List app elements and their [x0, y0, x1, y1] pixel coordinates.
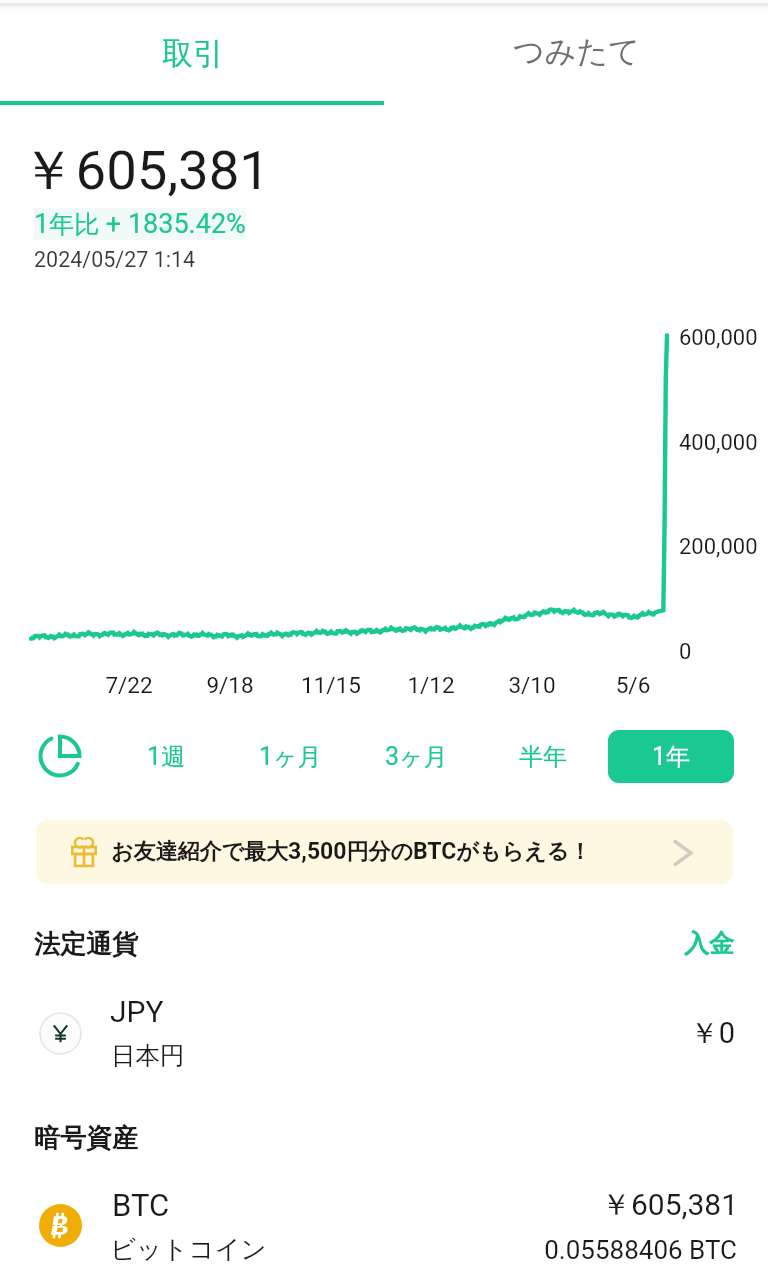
button[interactable]: 半年 — [488, 730, 598, 783]
staticText: お友達紹介で最大3,500円分のBTCがもらえる！ — [111, 838, 591, 866]
staticText: 暗号資産 — [34, 1122, 138, 1155]
staticText: 0.05588406 BTC — [460, 1235, 737, 1265]
staticText: 1週 — [147, 742, 186, 772]
button[interactable]: 1年 — [608, 730, 734, 783]
staticText: ビットコイン — [110, 1233, 267, 1265]
staticText: 9/18 — [170, 672, 290, 698]
staticText: 入金 — [600, 928, 734, 959]
button[interactable]: BTC — [0, 1182, 768, 1274]
staticText: 半年 — [519, 742, 567, 772]
button[interactable]: 取引 — [0, 0, 384, 105]
staticText: 200,000 — [679, 534, 758, 560]
staticText: 0 — [679, 639, 692, 665]
staticText: ￥605,381 — [460, 1186, 738, 1224]
staticText: 1ヶ月 — [259, 742, 322, 772]
staticText: 1年比 + 1835.42% — [34, 208, 246, 240]
button[interactable]: お友達紹介で最大3,500円分のBTCがもらえる！ — [36, 820, 733, 884]
staticText: 600,000 — [679, 325, 758, 351]
staticText: JPY — [110, 994, 164, 1029]
staticText: 日本円 — [111, 1040, 185, 1071]
staticText: 7/22 — [69, 672, 189, 698]
button[interactable]: JPY — [0, 990, 768, 1080]
staticText: ￥0 — [560, 1015, 735, 1052]
button[interactable]: 3ヶ月 — [361, 730, 471, 783]
staticText: BTC — [112, 1187, 170, 1223]
button[interactable]: 1ヶ月 — [235, 730, 345, 783]
staticText: 取引 — [162, 34, 224, 73]
staticText: 400,000 — [679, 430, 758, 456]
staticText: ￥605,381 — [21, 137, 271, 206]
staticText: 11/15 — [271, 672, 391, 698]
button[interactable]: つみたて — [384, 0, 768, 105]
staticText: 3/10 — [472, 672, 592, 698]
staticText: 2024/05/27 1:14 — [34, 247, 196, 272]
staticText: 1/12 — [371, 672, 491, 698]
staticText: 3ヶ月 — [385, 742, 448, 772]
button[interactable]: ポートフォリオ — [30, 726, 90, 786]
staticText: 5/6 — [573, 672, 693, 698]
button[interactable]: 1週 — [111, 730, 221, 783]
staticText: 法定通貨 — [34, 928, 138, 961]
staticText: 1年 — [652, 742, 691, 772]
button[interactable]: 入金 — [600, 928, 734, 959]
staticText: つみたて — [513, 32, 640, 71]
